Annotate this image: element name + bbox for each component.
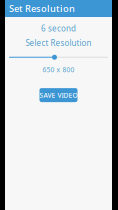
staticText: Set Resolution	[9, 2, 75, 15]
staticText: Select Resolution	[25, 38, 91, 48]
button[interactable]: SAVE VIDEO	[39, 88, 77, 102]
staticText: 6 second	[41, 23, 76, 34]
staticText: SAVE VIDEO	[39, 91, 77, 100]
staticText: 650 x 800	[42, 65, 74, 74]
